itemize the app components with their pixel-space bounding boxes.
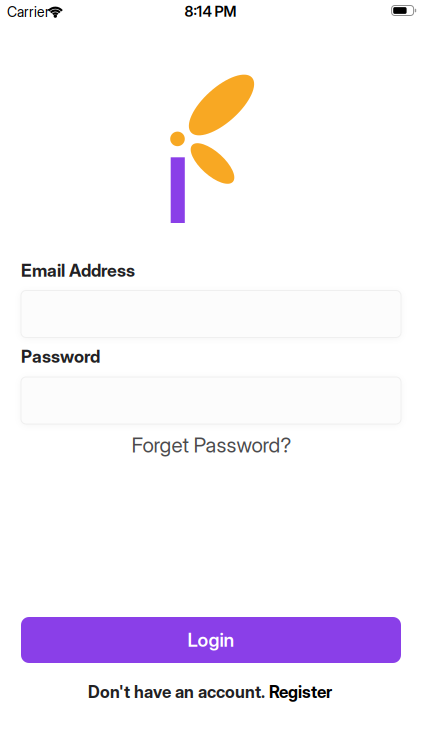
staticText: Carrier <box>7 3 50 20</box>
staticText: Email Address <box>21 260 135 281</box>
staticText: Login <box>187 629 234 651</box>
staticText: 8:14 PM <box>184 3 236 20</box>
staticText: Forget Password? <box>131 432 291 457</box>
staticText: Don't have an account. <box>88 682 265 702</box>
button[interactable]: Login <box>21 617 401 663</box>
staticText: Password <box>21 346 100 367</box>
button[interactable]: Forget Password? <box>131 432 291 457</box>
button[interactable]: Register <box>269 682 332 702</box>
staticText: Register <box>269 682 332 702</box>
